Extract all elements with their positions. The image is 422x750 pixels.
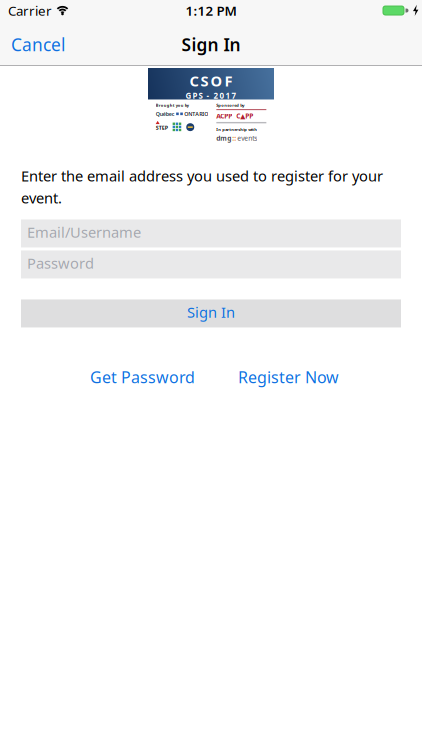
staticText: Québec [156, 110, 175, 117]
staticText: Sign In [187, 302, 235, 322]
staticText: Password [27, 253, 94, 273]
staticText: dmg [216, 134, 231, 143]
staticText: Email/Username [27, 222, 141, 242]
button[interactable]: Get Password [90, 366, 195, 388]
staticText: events [237, 134, 257, 143]
staticText: In partnership with [216, 127, 257, 132]
staticText: Sign In [181, 33, 240, 56]
staticText: Cancel [11, 33, 65, 56]
button[interactable]: Password [21, 250, 401, 278]
staticText: :: [232, 134, 236, 143]
button[interactable]: Cancel [11, 33, 65, 56]
button[interactable]: Sign In [21, 299, 401, 327]
staticText: Register Now [238, 366, 339, 388]
button[interactable]: Email/Username [21, 219, 401, 247]
button[interactable]: Register Now [238, 366, 339, 388]
staticText: C▲PP [236, 112, 253, 120]
staticText: Get Password [90, 366, 195, 388]
staticText: GPS - 2017 [185, 90, 236, 101]
staticText: Brought you by [156, 102, 189, 108]
staticText: Carrier [8, 2, 52, 19]
staticText: CSOF [189, 71, 232, 90]
staticText: ONTARIO [184, 110, 208, 117]
staticText: Sponsored by [216, 102, 244, 108]
staticText: STEP [156, 124, 168, 131]
staticText: ACPP [216, 112, 232, 120]
staticText: 1:12 PM [185, 2, 236, 19]
staticText: Enter the email address you used to regi… [21, 166, 383, 207]
